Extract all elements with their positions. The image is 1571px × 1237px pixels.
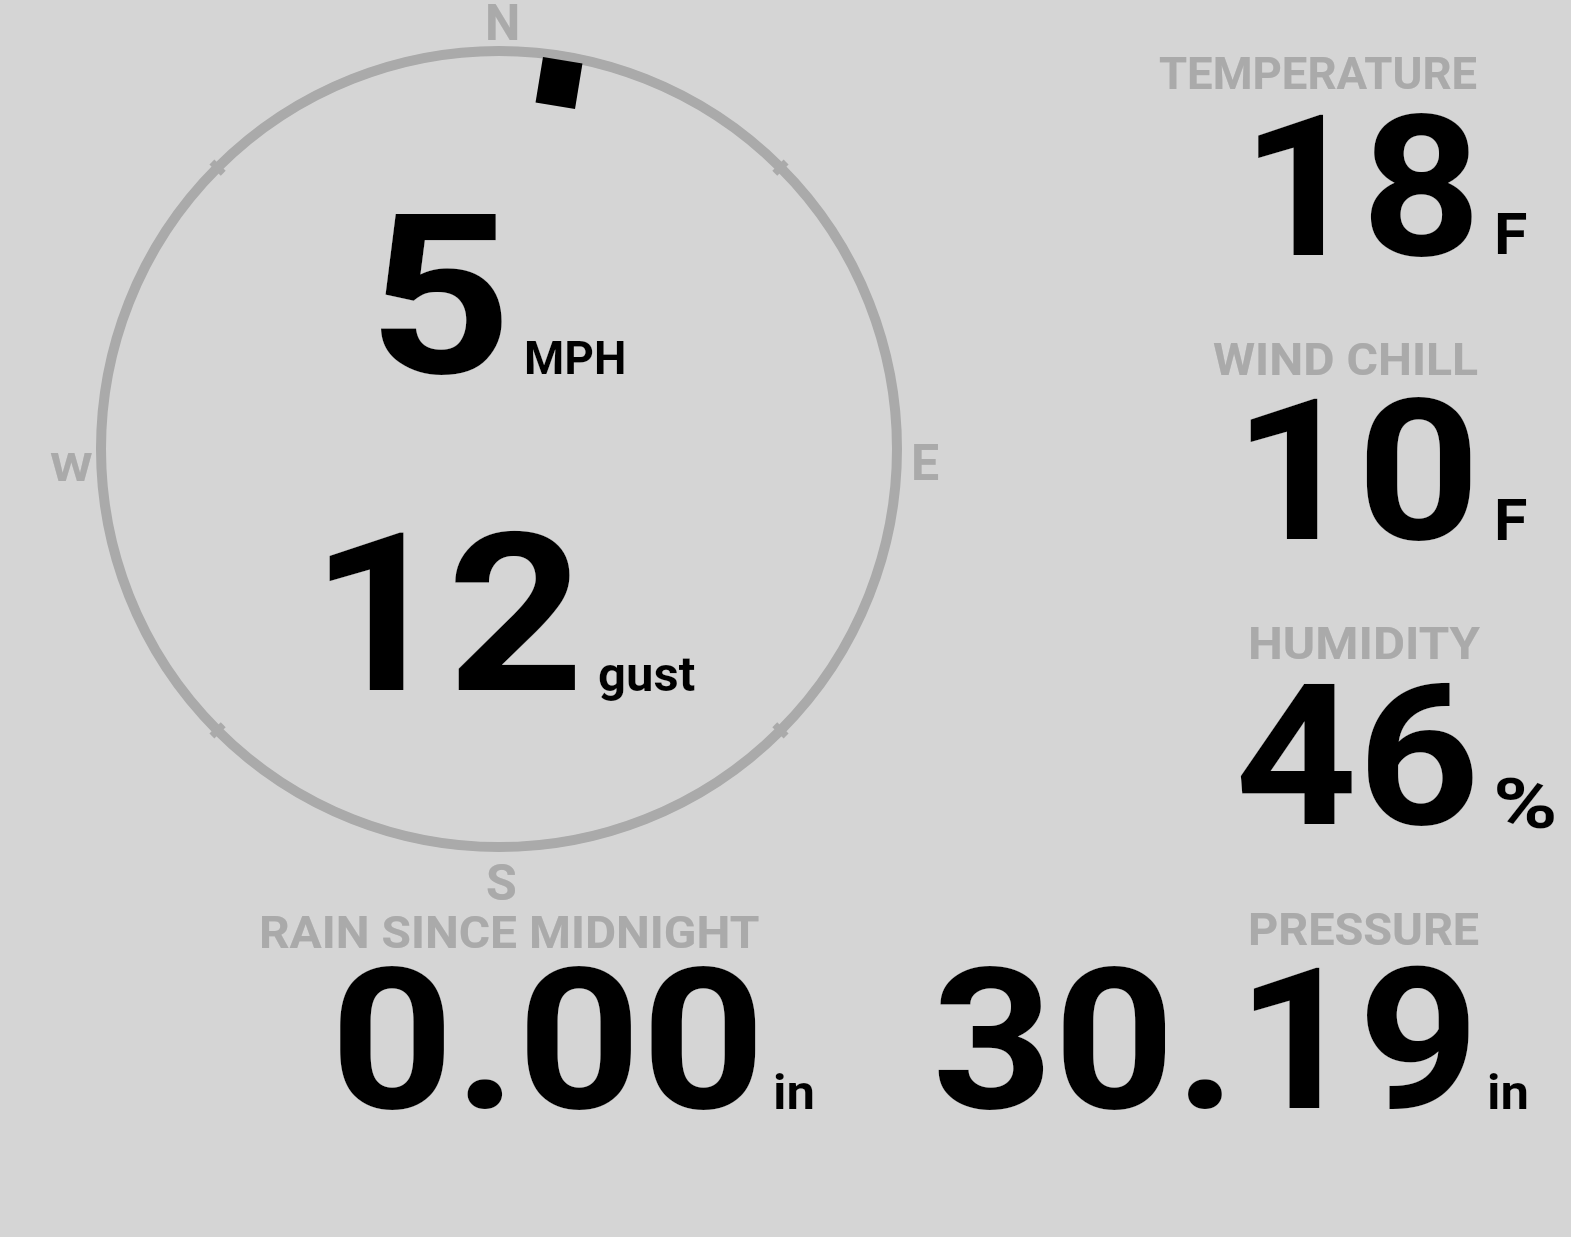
staticText: WIND CHILL	[1213, 333, 1478, 386]
staticText: in	[773, 1064, 815, 1120]
button[interactable]: Humidity 46 percent	[1150, 620, 1570, 835]
staticText: S	[486, 854, 517, 913]
staticText: N	[485, 0, 521, 53]
staticText: 18	[1241, 73, 1482, 303]
staticText: 5	[368, 166, 512, 427]
staticText: MPH	[524, 331, 627, 385]
staticText: F	[1494, 200, 1528, 268]
staticText: 30.19	[932, 926, 1480, 1156]
staticText: TEMPERATURE	[1159, 47, 1477, 100]
staticText: 0.00	[330, 926, 766, 1156]
staticText: HUMIDITY	[1248, 617, 1480, 670]
staticText: 12	[310, 485, 585, 744]
staticText: W	[50, 446, 93, 491]
staticText: 46	[1235, 642, 1480, 872]
staticText: PRESSURE	[1248, 903, 1480, 956]
staticText: F	[1494, 486, 1528, 554]
staticText: RAIN SINCE MIDNIGHT	[259, 906, 760, 959]
staticText: E	[911, 434, 940, 493]
button[interactable]: Rain since midnight 0.00 inches	[250, 908, 770, 1118]
staticText: in	[1487, 1064, 1529, 1120]
staticText: gust	[598, 646, 696, 703]
button[interactable]: Wind direction compass, 5 miles per hour	[89, 39, 909, 859]
button[interactable]: Pressure 30.19 inches	[900, 908, 1570, 1118]
staticText: 10	[1233, 357, 1480, 587]
staticText: %	[1493, 763, 1558, 845]
button[interactable]: Wind chill 10 degrees Fahrenheit	[1150, 336, 1570, 551]
button[interactable]: Temperature 18 degrees Fahrenheit	[1150, 50, 1570, 265]
